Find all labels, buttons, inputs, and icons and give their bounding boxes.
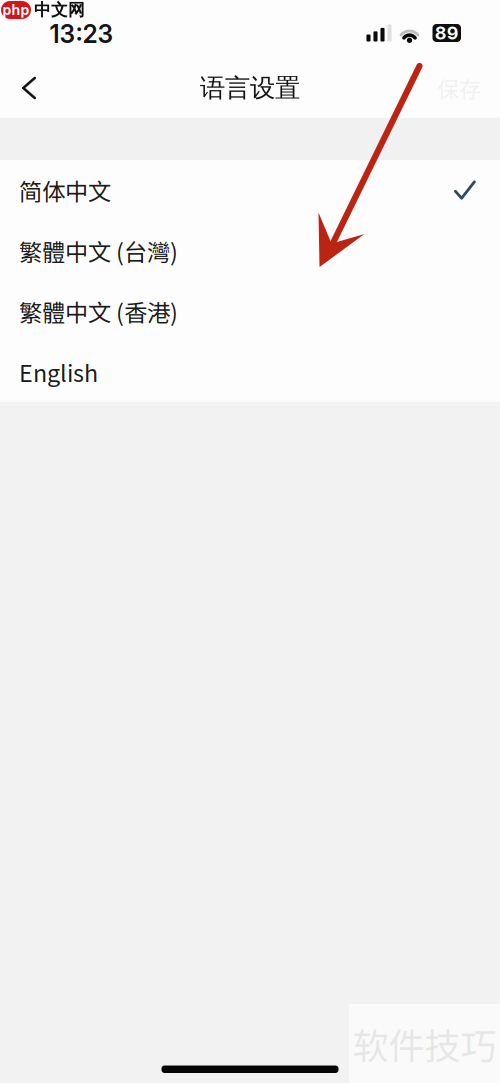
- staticText: 语言设置: [200, 72, 300, 104]
- button[interactable]: Back: [6, 60, 52, 116]
- button[interactable]: 简体中文: [0, 160, 500, 220]
- staticText: 13:23: [49, 19, 113, 49]
- button[interactable]: 繁體中文 (香港): [0, 281, 500, 341]
- staticText: php: [2, 1, 29, 18]
- staticText: 软件技巧: [352, 1017, 496, 1069]
- button[interactable]: 保存: [428, 60, 490, 116]
- staticText: 繁體中文 (香港): [19, 294, 178, 328]
- staticText: 繁體中文 (台灣): [19, 234, 178, 268]
- button[interactable]: 繁體中文 (台灣): [0, 220, 500, 281]
- staticText: 中文网: [34, 0, 85, 20]
- staticText: 保存: [437, 72, 481, 104]
- button[interactable]: English: [0, 341, 500, 402]
- staticText: 简体中文: [19, 173, 111, 207]
- staticText: English: [19, 355, 98, 389]
- staticText: 89: [435, 22, 459, 44]
